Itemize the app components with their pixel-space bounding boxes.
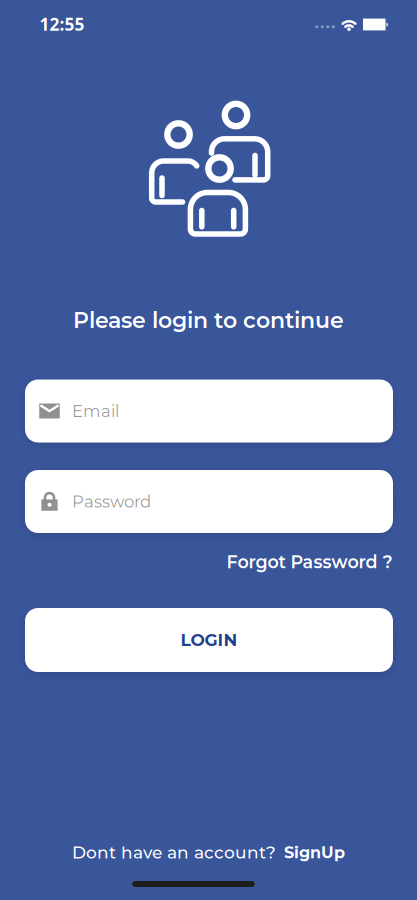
staticText: Please login to continue	[73, 307, 344, 333]
button[interactable]: SignUp	[284, 843, 345, 862]
staticText: 12:55	[39, 12, 84, 35]
button[interactable]: Password	[25, 470, 393, 533]
staticText: LOGIN	[180, 630, 237, 650]
button[interactable]: Forgot Password ?	[226, 551, 392, 573]
staticText: SignUp	[284, 843, 345, 862]
button[interactable]: LOGIN	[25, 608, 393, 672]
staticText: Email	[72, 401, 119, 421]
staticText: Dont have an account?	[72, 842, 276, 863]
button[interactable]: Email	[25, 379, 393, 442]
staticText: Forgot Password ?	[226, 551, 392, 573]
staticText: Password	[72, 491, 151, 511]
